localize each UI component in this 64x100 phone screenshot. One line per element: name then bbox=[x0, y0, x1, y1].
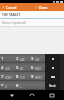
button[interactable]: 8 bbox=[15, 72, 30, 81]
staticText: 4 bbox=[1, 65, 4, 71]
button[interactable]: 5 bbox=[15, 63, 30, 72]
staticText: 8 bbox=[16, 74, 19, 80]
button[interactable]: Key bbox=[45, 72, 60, 81]
staticText: 9 bbox=[31, 74, 34, 80]
button[interactable]: 1 bbox=[0, 54, 15, 63]
staticText: Cancel bbox=[6, 5, 17, 9]
staticText: Name (optional) bbox=[2, 21, 27, 25]
button[interactable]: 7 bbox=[0, 72, 15, 81]
staticText: TUV bbox=[20, 76, 25, 80]
button[interactable]: Home bbox=[24, 90, 40, 100]
staticText: * bbox=[1, 83, 4, 89]
staticText: 2 bbox=[16, 56, 19, 62]
button[interactable]: 9 bbox=[30, 72, 45, 81]
staticText: WXYZ bbox=[35, 76, 42, 80]
button[interactable]: 6 bbox=[30, 63, 45, 72]
staticText: + bbox=[20, 85, 22, 89]
staticText: DEF bbox=[35, 58, 40, 62]
button[interactable]: 4 bbox=[0, 63, 15, 72]
button[interactable]: * bbox=[0, 81, 15, 90]
staticText: 5 bbox=[16, 65, 19, 71]
staticText: MNO bbox=[35, 67, 42, 71]
staticText: ABC bbox=[20, 58, 25, 62]
staticText bbox=[31, 83, 33, 89]
staticText: Done bbox=[39, 5, 48, 9]
staticText: THE TABLET bbox=[2, 13, 21, 17]
button[interactable]: Recents bbox=[44, 90, 60, 100]
staticText: GHI bbox=[5, 67, 10, 71]
button[interactable]: Key bbox=[45, 63, 60, 72]
staticText: PQRS bbox=[5, 76, 12, 80]
staticText: JKL bbox=[20, 67, 24, 71]
button[interactable]: Back bbox=[4, 90, 20, 100]
button[interactable]: Done bbox=[33, 3, 50, 11]
button[interactable]: Cancel bbox=[0, 3, 19, 11]
button[interactable]: Next bbox=[45, 81, 60, 90]
button[interactable]: 0 bbox=[15, 81, 30, 90]
staticText: Next bbox=[49, 84, 56, 88]
staticText: 6 bbox=[31, 65, 34, 71]
staticText: 7 bbox=[1, 74, 4, 80]
button[interactable] bbox=[30, 81, 45, 90]
button[interactable]: Key bbox=[45, 54, 60, 63]
staticText: 0 bbox=[16, 83, 19, 89]
staticText: 1 bbox=[1, 56, 4, 62]
button[interactable]: 2 bbox=[15, 54, 30, 63]
staticText: 3 bbox=[31, 56, 34, 62]
staticText: # bbox=[5, 85, 7, 89]
button[interactable]: 3 bbox=[30, 54, 45, 63]
